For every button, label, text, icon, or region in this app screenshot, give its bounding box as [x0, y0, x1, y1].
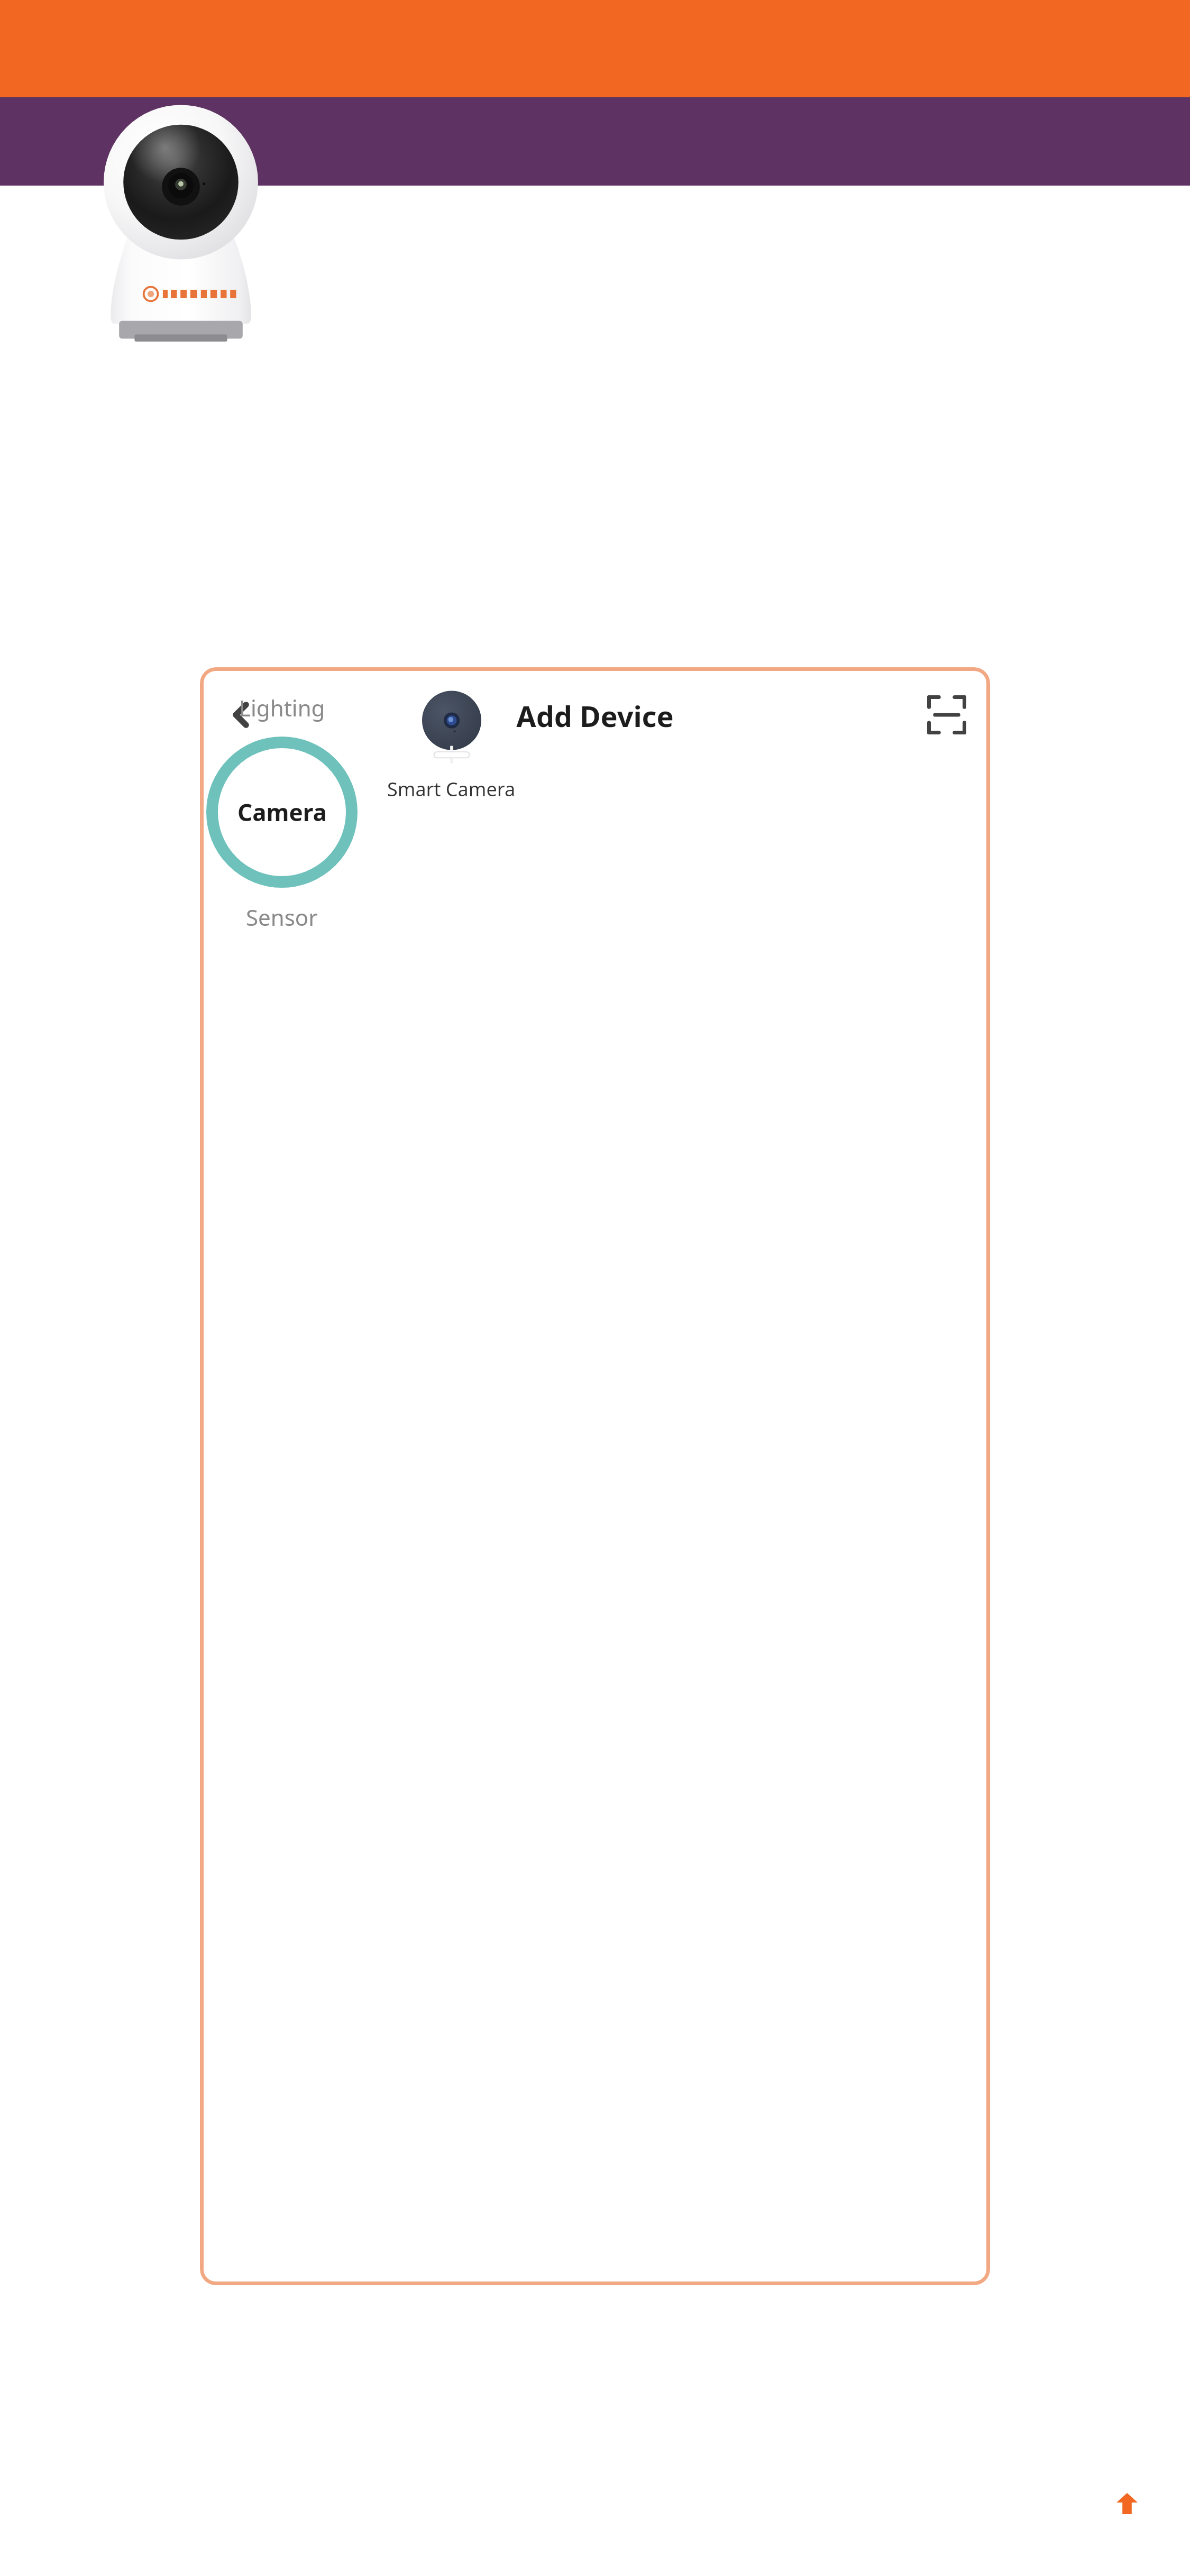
staticText: Smart Camera	[387, 776, 516, 802]
staticText: Add Device	[516, 696, 674, 735]
button[interactable]: Scan QR code	[915, 683, 978, 747]
button[interactable]: Lighting	[200, 682, 364, 733]
button[interactable]: Smart Camera	[364, 688, 538, 802]
staticText: Lighting	[239, 693, 325, 723]
button[interactable]: Camera	[200, 733, 364, 891]
staticText: Sensor	[246, 902, 318, 932]
button[interactable]: Back	[210, 683, 274, 747]
staticText: Camera	[237, 796, 327, 828]
button[interactable]: Sensor	[200, 891, 364, 942]
button[interactable]: Scroll to top	[1110, 2486, 1145, 2521]
